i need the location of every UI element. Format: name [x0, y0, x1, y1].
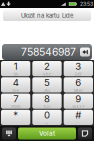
button[interactable]: 9 — [64, 93, 93, 109]
staticText: TUV — [43, 105, 51, 109]
button[interactable]: 6 — [64, 77, 93, 92]
button[interactable]: 2 — [32, 61, 62, 76]
staticText: 9 — [75, 93, 81, 105]
staticText: DEF — [75, 72, 82, 77]
button[interactable]: 5 — [32, 77, 62, 92]
button[interactable]: Backspace — [80, 47, 90, 56]
button[interactable]: Add contact — [78, 127, 92, 139]
button[interactable]: 4 — [1, 77, 30, 92]
staticText: 4 — [13, 77, 19, 88]
staticText: 7 — [13, 93, 18, 105]
staticText: 23:53 — [80, 1, 93, 7]
button[interactable]: * — [1, 110, 30, 125]
button[interactable]: 8 — [32, 93, 62, 109]
button[interactable]: 1 — [1, 61, 30, 76]
staticText: 3 — [75, 60, 81, 72]
staticText: PQRS — [11, 105, 20, 109]
staticText: 5 — [44, 77, 50, 88]
button[interactable]: Keypad — [2, 127, 16, 139]
staticText: GHI — [12, 88, 19, 93]
staticText: 8 — [44, 93, 50, 105]
button[interactable]: # — [64, 110, 93, 125]
staticText: MNO — [74, 88, 83, 93]
staticText: * — [13, 109, 18, 121]
button[interactable]: 7 — [1, 93, 30, 109]
staticText: WXYZ — [72, 105, 84, 109]
button[interactable]: Volat — [18, 127, 76, 139]
button[interactable]: 0 — [32, 110, 62, 125]
staticText: + — [45, 121, 48, 125]
staticText: Uložit na kartu Lidé — [21, 12, 73, 19]
button[interactable]: 3 — [64, 61, 93, 76]
staticText: 2 — [44, 60, 50, 72]
button[interactable]: Uložit na kartu Lidé — [3, 10, 91, 21]
staticText: # — [75, 109, 81, 121]
staticText: 758546987 — [21, 46, 76, 58]
staticText: Volat — [39, 130, 55, 137]
staticText: oo — [14, 72, 18, 77]
staticText: 1 — [14, 60, 18, 72]
staticText: ABC — [42, 72, 51, 77]
staticText: 0 — [44, 109, 50, 121]
staticText: 6 — [75, 77, 81, 88]
staticText: JKL — [43, 88, 50, 93]
